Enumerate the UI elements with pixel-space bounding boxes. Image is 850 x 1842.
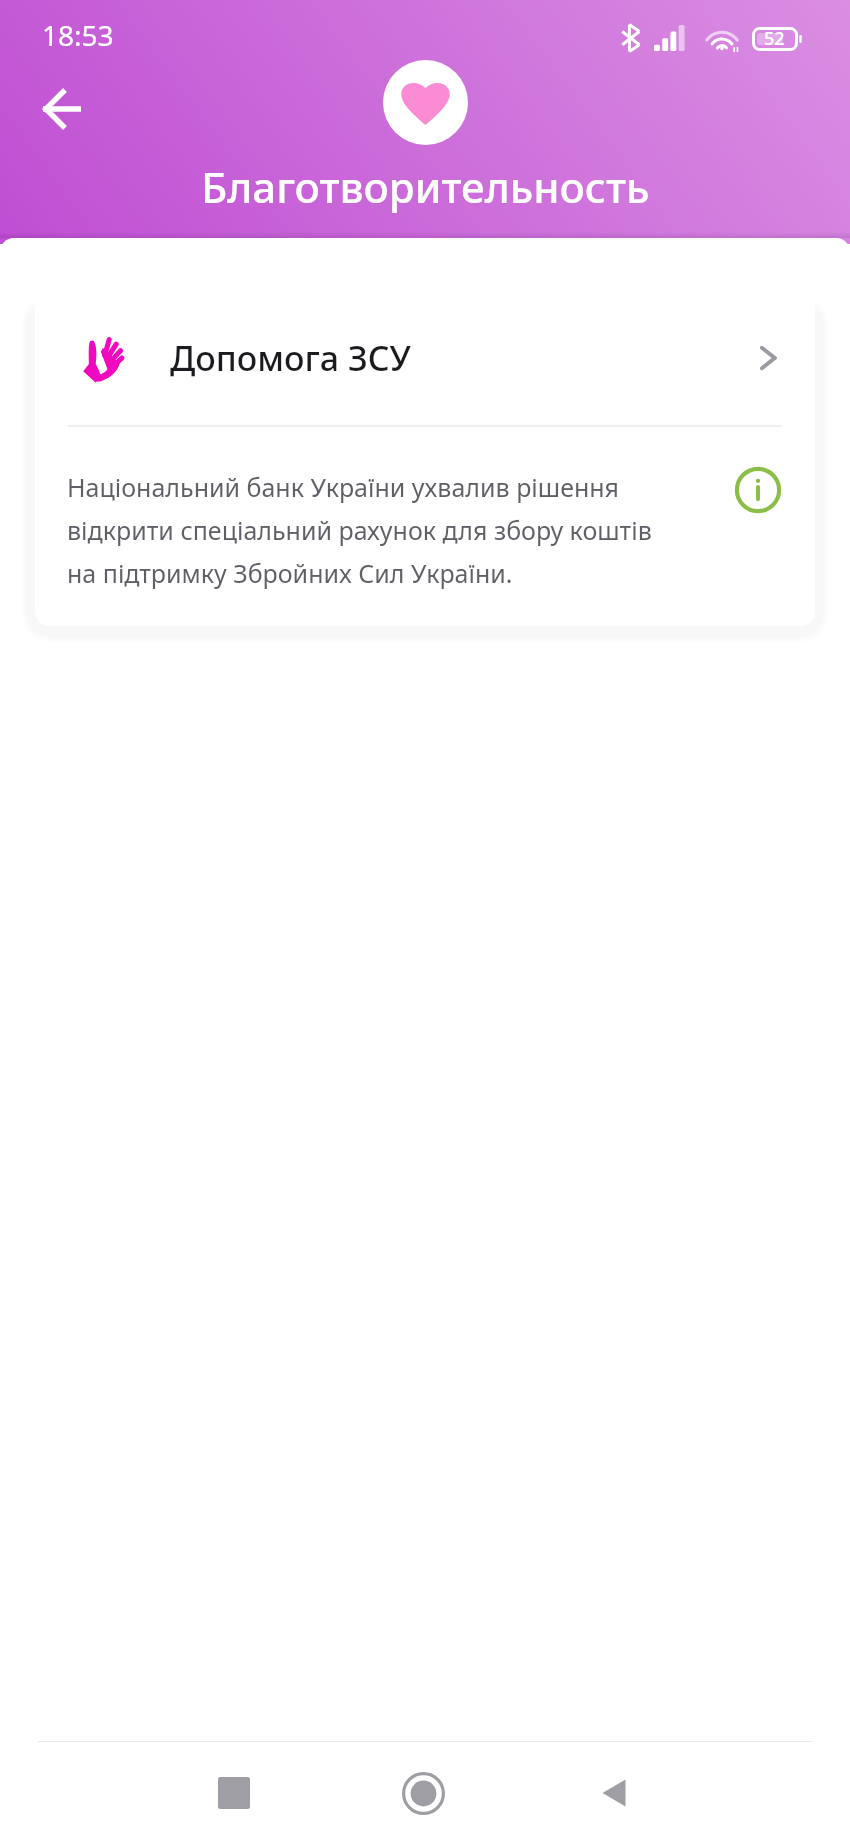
button[interactable]: Home	[375, 1745, 471, 1841]
staticText: Національний банк України ухвалив рішенн…	[67, 470, 667, 590]
button[interactable]: Back	[19, 66, 105, 152]
staticText: 52	[764, 26, 785, 51]
button[interactable]: Back	[566, 1745, 662, 1841]
button[interactable]: Info	[731, 463, 785, 517]
staticText: Благотворительность	[201, 158, 650, 215]
button[interactable]: Допомога ЗСУ	[35, 291, 815, 425]
staticText: Допомога ЗСУ	[170, 335, 411, 381]
staticText: 18:53	[42, 16, 114, 54]
button[interactable]: Recent apps	[186, 1745, 282, 1841]
